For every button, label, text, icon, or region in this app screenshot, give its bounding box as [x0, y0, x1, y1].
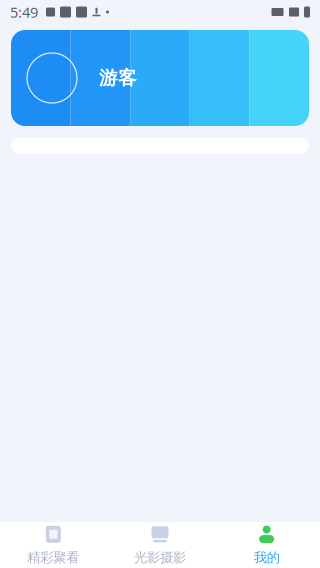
- staticText: 我的: [254, 549, 280, 566]
- staticText: 精彩聚看: [27, 549, 79, 566]
- staticText: 游客: [99, 66, 137, 89]
- button[interactable]: 我的: [213, 518, 320, 568]
- button[interactable]: 游客: [11, 30, 309, 126]
- staticText: 光影摄影: [134, 549, 186, 566]
- button[interactable]: 光影摄影: [107, 518, 213, 568]
- button[interactable]: 精彩聚看: [0, 518, 107, 568]
- staticText: 5:49: [10, 2, 38, 22]
